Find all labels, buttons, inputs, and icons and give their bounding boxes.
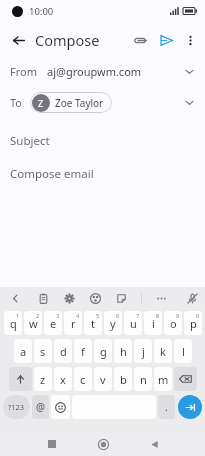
button[interactable]: . [158, 395, 175, 419]
staticText: o [170, 316, 177, 331]
button[interactable]: m [154, 367, 172, 391]
button[interactable]: Back [141, 432, 167, 456]
button[interactable]: Shift [9, 367, 32, 391]
staticText: r [71, 316, 76, 331]
staticText: 0 [196, 312, 200, 319]
button[interactable]: Stickers [108, 287, 134, 309]
button[interactable]: b [114, 367, 132, 391]
staticText: k [160, 344, 166, 359]
staticText: 2 [36, 312, 40, 319]
staticText: h [120, 344, 127, 359]
button[interactable]: Home [90, 432, 116, 456]
button[interactable]: More [148, 287, 174, 309]
button[interactable]: s [34, 339, 52, 363]
staticText: @ [36, 400, 45, 414]
button[interactable]: x [54, 367, 72, 391]
staticText: y [110, 316, 116, 331]
staticText: 1 [16, 312, 20, 319]
staticText: 8 [156, 312, 160, 319]
staticText: b [120, 372, 127, 387]
button[interactable]: c [74, 367, 92, 391]
button[interactable]: @ [32, 395, 49, 419]
button[interactable]: Voice input off [179, 287, 205, 309]
button[interactable]: w [24, 311, 42, 335]
staticText: To [10, 95, 23, 110]
button[interactable]: ?123 [3, 395, 30, 419]
staticText: m [158, 372, 169, 387]
button[interactable]: Clipboard [30, 287, 56, 309]
button[interactable]: Attach file [127, 27, 153, 53]
staticText: l [182, 344, 185, 359]
staticText: c [80, 372, 86, 387]
button[interactable]: Enter [178, 395, 202, 419]
staticText: From [10, 64, 37, 79]
staticText: 3 [56, 312, 60, 319]
button[interactable]: Themes [82, 287, 108, 309]
staticText: aj@groupwm.com [47, 64, 142, 79]
staticText: Compose email [10, 166, 94, 182]
button[interactable]: r [64, 311, 82, 335]
staticText: 6 [116, 312, 120, 319]
staticText: ?123 [8, 402, 25, 412]
staticText: z [40, 372, 46, 387]
button[interactable]: z [34, 367, 52, 391]
button[interactable]: Backspace [174, 367, 197, 391]
button[interactable]: Z [30, 92, 112, 113]
staticText: v [100, 372, 106, 387]
staticText: 10:00 [29, 5, 54, 18]
button[interactable]: Back [5, 27, 31, 53]
staticText: . [165, 400, 168, 414]
staticText: x [60, 372, 66, 387]
button[interactable]: d [54, 339, 72, 363]
button[interactable]: q [4, 311, 22, 335]
button[interactable]: l [174, 339, 192, 363]
button[interactable]: n [134, 367, 152, 391]
staticText: 4 [76, 312, 80, 319]
staticText: e [50, 316, 57, 331]
staticText: p [190, 316, 197, 331]
button[interactable]: f [74, 339, 92, 363]
staticText: Subject [10, 133, 50, 149]
button[interactable]: More options [179, 27, 202, 53]
button[interactable]: Emoji [51, 395, 70, 419]
staticText: t [91, 316, 95, 331]
button[interactable]: a [14, 339, 32, 363]
staticText: i [152, 316, 155, 331]
button[interactable]: p [184, 311, 202, 335]
button[interactable]: y [104, 311, 122, 335]
button[interactable]: j [134, 339, 152, 363]
button[interactable]: o [164, 311, 182, 335]
staticText: 9 [176, 312, 180, 319]
staticText: Z [38, 97, 44, 109]
staticText: j [142, 344, 145, 359]
staticText: 7 [136, 312, 140, 319]
staticText: 5 [96, 312, 100, 319]
staticText: w [29, 316, 38, 331]
staticText: f [81, 344, 85, 359]
staticText: n [140, 372, 147, 387]
staticText: g [100, 344, 107, 359]
staticText: Zoe Taylor [55, 96, 104, 110]
staticText: Compose [35, 30, 100, 50]
button[interactable]: k [154, 339, 172, 363]
button[interactable]: Recents [39, 432, 65, 456]
staticText: s [40, 344, 46, 359]
button[interactable]: e [44, 311, 62, 335]
button[interactable]: g [94, 339, 112, 363]
button[interactable]: v [94, 367, 112, 391]
staticText: a [20, 344, 27, 359]
staticText: d [60, 344, 67, 359]
button[interactable]: Collapse toolbar [0, 287, 30, 309]
staticText: q [10, 316, 17, 331]
button[interactable]: i [144, 311, 162, 335]
button[interactable]: To [0, 85, 205, 119]
button[interactable]: Settings [56, 287, 82, 309]
button[interactable]: u [124, 311, 142, 335]
button[interactable]: t [84, 311, 102, 335]
button[interactable]: h [114, 339, 132, 363]
staticText: u [130, 316, 137, 331]
button[interactable]: From [0, 58, 205, 85]
button[interactable]: Send [153, 27, 179, 53]
